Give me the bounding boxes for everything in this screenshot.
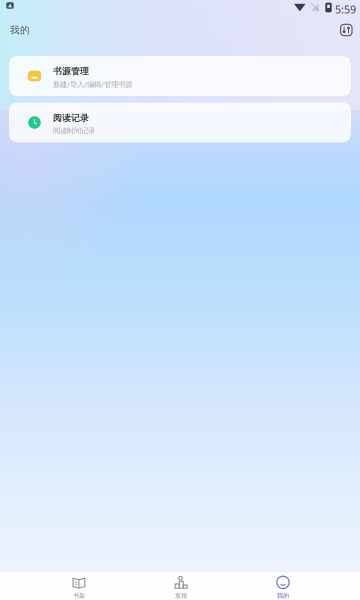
button[interactable]: 书架: [28, 567, 130, 600]
staticText: 发现: [175, 592, 187, 600]
staticText: 阅读时间记录: [53, 126, 95, 135]
button[interactable]: 我的: [232, 567, 334, 600]
button[interactable]: 发现: [130, 567, 232, 600]
staticText: 我的: [10, 24, 30, 36]
staticText: 阅读记录: [53, 113, 89, 124]
staticText: 书源管理: [53, 66, 89, 77]
staticText: 书架: [73, 592, 85, 600]
staticText: 我的: [277, 592, 289, 600]
button[interactable]: 书源管理: [9, 56, 351, 96]
button[interactable]: 阅读记录: [9, 102, 351, 142]
button[interactable]: Settings: [335, 18, 358, 42]
staticText: 5:59: [335, 2, 356, 16]
staticText: 新建/导入/编辑/管理书源: [53, 79, 132, 89]
